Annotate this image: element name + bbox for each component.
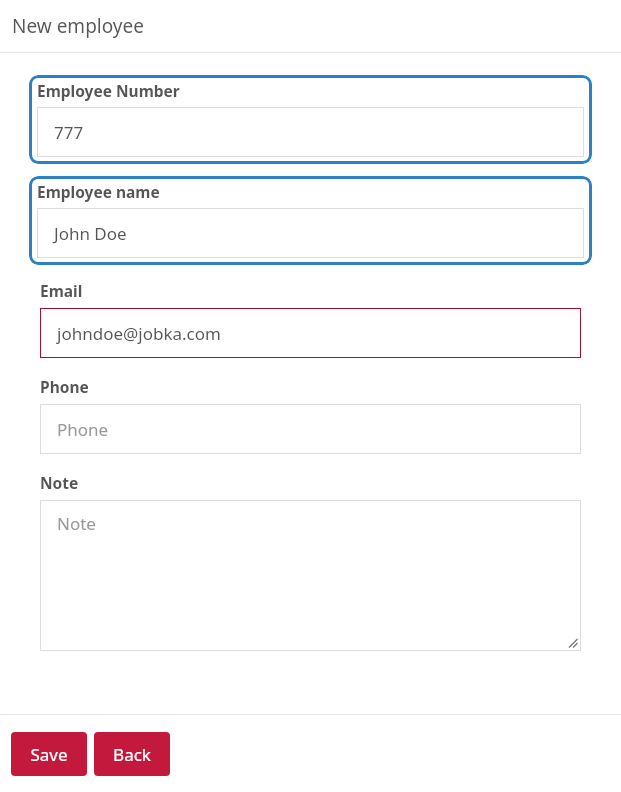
staticText: Save [30,743,68,766]
button[interactable]: johndoe@jobka.com [40,308,581,358]
button[interactable]: Save [11,732,87,776]
staticText: New employee [12,13,144,39]
staticText: John Doe [54,222,127,245]
staticText: Phone [57,418,109,441]
button[interactable]: John Doe [37,208,584,258]
button[interactable]: Back [94,732,170,776]
button[interactable]: Phone [40,404,581,454]
staticText: Employee Number [37,80,180,101]
staticText: Back [113,743,151,766]
staticText: 777 [54,121,84,144]
staticText: Phone [40,376,89,397]
button[interactable]: Note [40,500,581,651]
staticText: Email [40,280,83,301]
staticText: johndoe@jobka.com [57,322,221,345]
button[interactable]: Employee Number [29,75,592,164]
button[interactable]: Employee name [29,176,592,265]
button[interactable]: 777 [37,107,584,157]
staticText: Employee name [37,181,160,202]
staticText: Note [40,472,79,493]
staticText: Note [57,512,96,535]
